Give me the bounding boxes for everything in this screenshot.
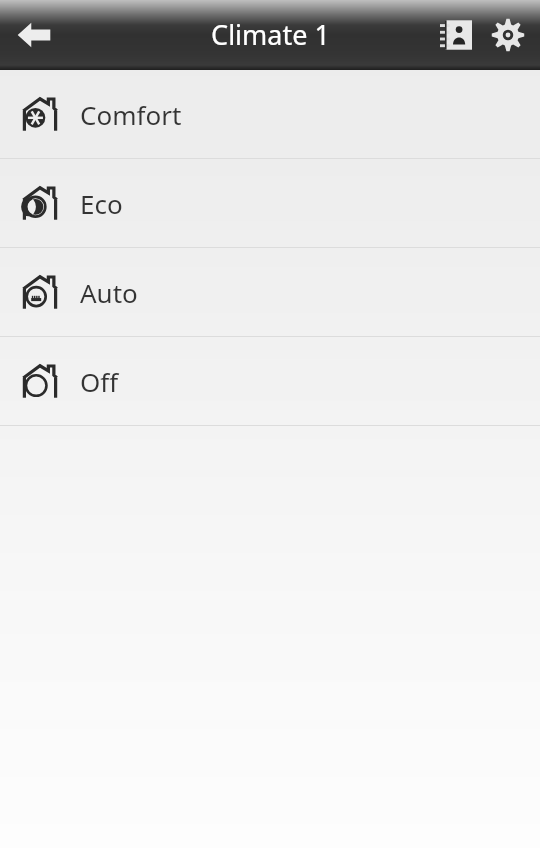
staticText: Comfort bbox=[80, 97, 182, 132]
button[interactable]: Eco bbox=[0, 159, 540, 247]
staticText: Eco bbox=[80, 186, 123, 221]
button[interactable]: Settings bbox=[482, 9, 534, 61]
staticText: Climate 1 bbox=[211, 16, 330, 53]
button[interactable]: Back bbox=[6, 7, 62, 63]
staticText: Off bbox=[80, 364, 119, 399]
button[interactable]: Contacts bbox=[430, 9, 482, 61]
button[interactable]: Comfort bbox=[0, 70, 540, 158]
staticText: Auto bbox=[80, 275, 138, 310]
button[interactable]: Off bbox=[0, 337, 540, 425]
button[interactable]: Auto bbox=[0, 248, 540, 336]
